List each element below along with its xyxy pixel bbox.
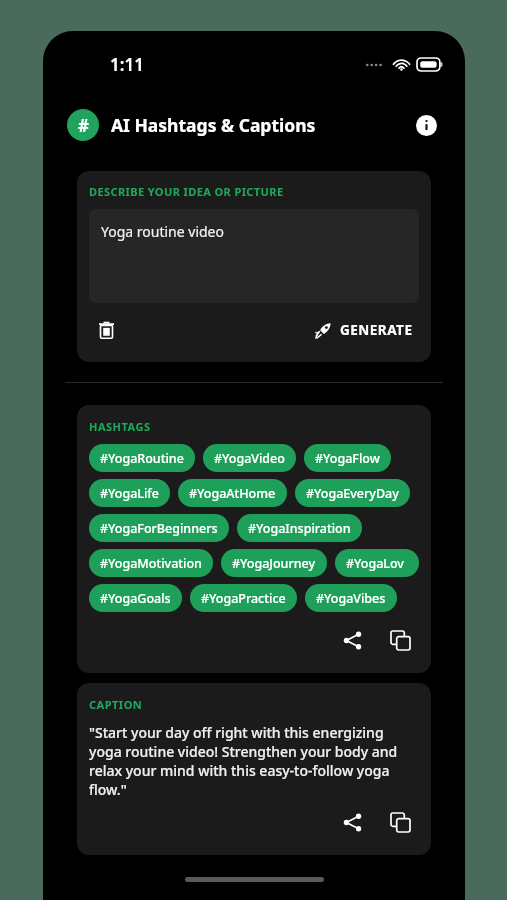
staticText: #YogaAtHome — [189, 485, 276, 502]
staticText: #YogaEveryDay — [306, 485, 399, 502]
staticText: Yoga routine video — [101, 222, 224, 241]
button[interactable]: #YogaEveryDay — [295, 479, 410, 507]
button[interactable]: #YogaLife — [89, 479, 170, 507]
button[interactable]: Info — [411, 110, 441, 140]
button[interactable]: Copy — [381, 621, 419, 659]
button[interactable]: Clear — [89, 313, 123, 347]
button[interactable]: #YogaForBeginners — [89, 514, 229, 542]
button[interactable]: #YogaJourney — [221, 549, 327, 577]
button[interactable]: Share — [333, 803, 371, 841]
button[interactable]: Share — [333, 621, 371, 659]
staticText: #YogaLove — [346, 555, 408, 572]
staticText: #YogaPractice — [201, 590, 286, 607]
button[interactable]: Yoga routine video — [89, 209, 419, 303]
staticText: "Start your day off right with this ener… — [89, 723, 419, 799]
staticText: 1:11 — [110, 53, 144, 76]
button[interactable]: #YogaRoutine — [89, 444, 195, 472]
staticText: CAPTION — [89, 697, 143, 712]
button[interactable]: #YogaGoals — [89, 584, 182, 612]
staticText: #YogaMotivation — [100, 555, 202, 572]
button[interactable]: GENERATE — [309, 317, 419, 343]
staticText: #YogaVideo — [214, 450, 285, 467]
button[interactable]: Copy — [381, 803, 419, 841]
button[interactable]: #YogaPractice — [190, 584, 297, 612]
button[interactable]: #YogaVibes — [305, 584, 397, 612]
button[interactable]: #YogaMotivation — [89, 549, 213, 577]
staticText: #YogaJourney — [232, 555, 316, 572]
staticText: AI Hashtags & Captions — [111, 113, 316, 137]
button[interactable]: #YogaLove — [335, 549, 419, 577]
button[interactable]: #YogaAtHome — [178, 479, 287, 507]
staticText: #YogaRoutine — [100, 450, 184, 467]
staticText: # — [78, 114, 89, 137]
staticText: #YogaGoals — [100, 590, 171, 607]
button[interactable]: #YogaVideo — [203, 444, 296, 472]
staticText: #YogaLife — [100, 485, 159, 502]
staticText: HASHTAGS — [89, 419, 151, 434]
button[interactable]: #YogaInspiration — [237, 514, 362, 542]
staticText: #YogaFlow — [315, 450, 380, 467]
staticText: DESCRIBE YOUR IDEA OR PICTURE — [89, 184, 284, 199]
staticText: #YogaForBeginners — [100, 520, 218, 537]
button[interactable]: #YogaFlow — [304, 444, 391, 472]
staticText: #YogaInspiration — [248, 520, 351, 537]
staticText: #YogaVibes — [316, 590, 386, 607]
button[interactable]: # — [67, 109, 99, 141]
staticText: GENERATE — [340, 321, 413, 339]
